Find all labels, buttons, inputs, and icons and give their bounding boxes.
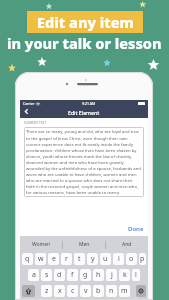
staticText: c xyxy=(71,286,75,296)
staticText: o xyxy=(129,254,134,264)
staticText: e xyxy=(52,254,56,264)
staticText: f xyxy=(71,270,74,280)
button[interactable]: Back xyxy=(20,105,32,117)
button[interactable]: k xyxy=(119,269,130,281)
button[interactable]: Men xyxy=(63,236,105,253)
button[interactable]: x xyxy=(54,285,65,297)
button[interactable]: f xyxy=(67,269,78,281)
staticText: z xyxy=(45,286,49,296)
staticText: q xyxy=(25,254,30,264)
staticText: i xyxy=(118,254,120,264)
button[interactable]: l xyxy=(132,269,140,281)
staticText: h xyxy=(96,270,101,280)
button[interactable]: z xyxy=(41,285,52,297)
staticText: There are so many, young and old, who ar… xyxy=(26,129,142,195)
staticText: l xyxy=(135,270,137,280)
button[interactable]: c xyxy=(67,285,78,297)
button[interactable]: Women xyxy=(20,236,62,253)
button[interactable]: q xyxy=(22,253,33,265)
staticText: b xyxy=(96,286,101,296)
button[interactable]: a xyxy=(28,269,39,281)
staticText: a xyxy=(32,270,36,280)
button[interactable]: v xyxy=(80,285,91,297)
staticText: Men xyxy=(79,241,90,248)
staticText: m xyxy=(121,286,128,296)
button[interactable]: d xyxy=(54,269,65,281)
staticText: w xyxy=(38,254,44,264)
button[interactable]: s xyxy=(41,269,52,281)
button[interactable]: t xyxy=(74,253,85,265)
staticText: t xyxy=(78,254,81,264)
button[interactable]: i xyxy=(113,253,124,265)
staticText: n xyxy=(109,286,114,296)
button[interactable]: y xyxy=(87,253,98,265)
staticText: d xyxy=(57,270,62,280)
staticText: And xyxy=(122,241,132,248)
staticText: x xyxy=(58,286,62,296)
button[interactable]: w xyxy=(35,253,46,265)
button[interactable]: Shift xyxy=(22,285,35,297)
button[interactable]: n xyxy=(106,285,117,297)
staticText: g xyxy=(83,270,88,280)
staticText: in your talk or lesson xyxy=(7,33,162,53)
staticText: r xyxy=(65,254,68,264)
staticText: s xyxy=(45,270,49,280)
staticText: Carrier xyxy=(23,101,35,106)
button[interactable]: j xyxy=(106,269,117,281)
button[interactable]: r xyxy=(61,253,72,265)
staticText: 9:21 AM xyxy=(82,101,96,106)
staticText: Done xyxy=(128,225,144,233)
staticText: ELEMENT TEXT xyxy=(24,121,47,125)
staticText: Edit any item xyxy=(37,12,134,32)
button[interactable]: h xyxy=(93,269,104,281)
staticText: u xyxy=(103,254,108,264)
button[interactable]: o xyxy=(126,253,137,265)
button[interactable]: b xyxy=(93,285,104,297)
button[interactable]: m xyxy=(119,285,130,297)
staticText: k xyxy=(123,270,127,280)
button[interactable]: p xyxy=(139,253,146,265)
staticText: p xyxy=(140,254,145,264)
button[interactable]: g xyxy=(80,269,91,281)
button[interactable]: And xyxy=(106,236,148,253)
staticText: j xyxy=(111,270,113,280)
staticText: v xyxy=(84,286,88,296)
staticText: Edit Element xyxy=(68,109,100,116)
staticText: y xyxy=(91,254,95,264)
button[interactable]: Backspace xyxy=(136,285,146,297)
staticText: Women xyxy=(32,241,51,248)
button[interactable]: e xyxy=(48,253,59,265)
button[interactable]: u xyxy=(100,253,111,265)
button[interactable]: Done xyxy=(124,223,148,235)
